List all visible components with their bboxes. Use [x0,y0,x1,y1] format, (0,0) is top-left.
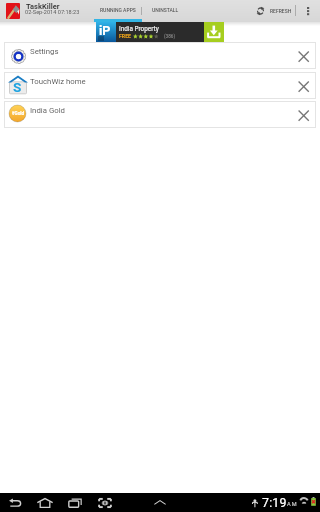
button[interactable]: ₹Gold [4,101,316,128]
staticText: Settings [30,47,59,56]
staticText: 02-Sep-2014 07:18:23 [25,9,80,16]
button[interactable]: Close Settings [291,43,315,70]
staticText: UNINSTALL [152,7,179,13]
staticText: FREE [119,33,131,39]
button[interactable]: Screenshot [94,493,116,512]
staticText: India Gold [30,106,65,115]
button[interactable]: TaskKiller [0,0,86,22]
staticText: S [13,79,22,95]
staticText: (386) [164,34,176,40]
staticText: 7:19 [262,495,287,510]
button[interactable]: More options [300,0,315,22]
button[interactable]: Close India Gold [291,102,315,129]
staticText: AM [287,501,298,508]
button[interactable]: Back [5,493,26,512]
staticText: TouchWiz home [30,77,86,86]
button[interactable]: iP [96,22,224,42]
button[interactable]: Home [33,493,57,512]
button[interactable]: S [4,72,316,99]
staticText: TaskKiller [26,2,60,11]
button[interactable]: UNINSTALL [141,0,189,22]
button[interactable]: Expand [150,493,170,512]
button[interactable]: Recent apps [64,493,86,512]
button[interactable]: REFRESH [252,0,294,22]
staticText: REFRESH [270,8,292,14]
button[interactable]: Settings [4,42,316,69]
button[interactable]: Install [204,22,224,42]
staticText: ₹Gold [12,111,25,117]
button[interactable]: Close TouchWiz home [291,73,315,100]
button[interactable]: RUNNING APPS [94,0,142,22]
staticText: India Property [119,25,159,33]
staticText: iP [99,23,111,38]
staticText: RUNNING APPS [100,7,136,13]
